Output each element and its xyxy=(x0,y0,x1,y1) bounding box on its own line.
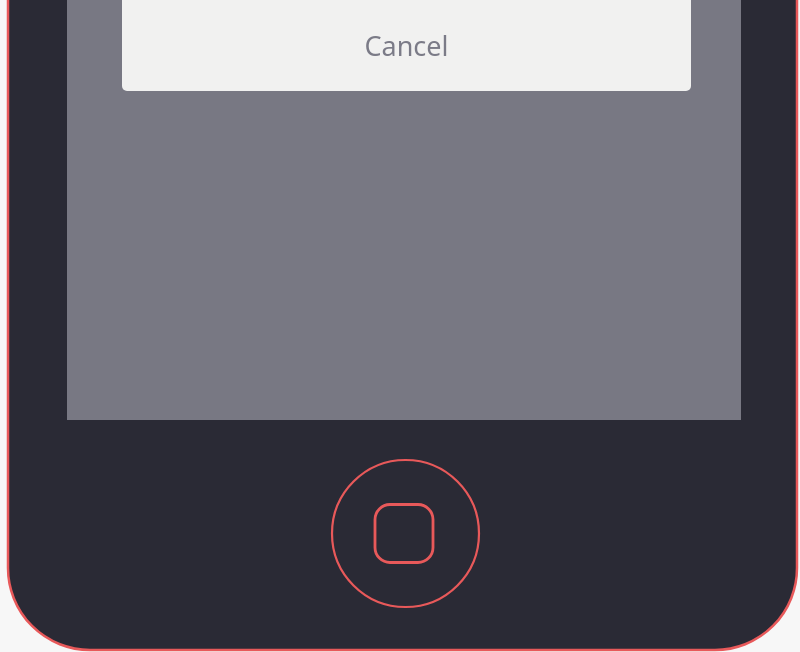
button[interactable]: Cancel xyxy=(122,0,691,91)
staticText: Cancel xyxy=(364,27,449,64)
button[interactable]: Home xyxy=(331,459,480,608)
